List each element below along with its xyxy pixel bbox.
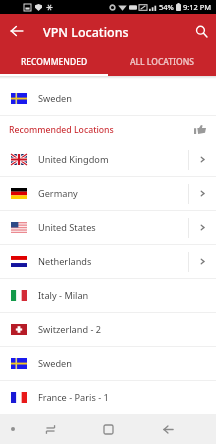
staticText: 54%	[159, 2, 174, 12]
button[interactable]: RECOMMENDED	[0, 48, 108, 76]
button[interactable]: Germany	[0, 177, 216, 210]
button[interactable]: Assistant	[4, 420, 22, 438]
staticText: Recommended Locations	[9, 124, 114, 136]
button[interactable]: Back	[156, 417, 180, 441]
staticText: United States	[38, 221, 96, 234]
button[interactable]: United States	[0, 211, 216, 244]
staticText: United Kingdom	[38, 153, 109, 166]
staticText: France - Paris - 1	[38, 391, 109, 404]
button[interactable]: United Kingdom	[0, 143, 216, 176]
staticText: VPN Locations	[43, 24, 129, 41]
button[interactable]: Sweden	[0, 79, 216, 115]
staticText: ALL LOCATIONS	[130, 56, 194, 68]
staticText: Sweden	[38, 92, 72, 105]
button[interactable]: Italy - Milan	[0, 279, 216, 312]
staticText: RECOMMENDED	[21, 56, 88, 68]
button[interactable]: France - Paris - 1	[0, 381, 216, 414]
button[interactable]: Search	[187, 17, 215, 45]
button[interactable]: ALL LOCATIONS	[108, 48, 216, 76]
button[interactable]: Sweden	[0, 347, 216, 380]
button[interactable]: Switzerland - 2	[0, 313, 216, 346]
staticText: 9:12 PM	[183, 2, 212, 12]
button[interactable]: Back	[3, 17, 31, 45]
staticText: Switzerland - 2	[38, 323, 102, 336]
staticText: Italy - Milan	[38, 289, 89, 302]
staticText: Sweden	[38, 357, 72, 370]
button[interactable]: Netherlands	[0, 245, 216, 278]
staticText: Netherlands	[38, 255, 92, 268]
button[interactable]: Home	[96, 417, 120, 441]
button[interactable]: Recents	[38, 417, 62, 441]
staticText: Germany	[38, 187, 78, 200]
